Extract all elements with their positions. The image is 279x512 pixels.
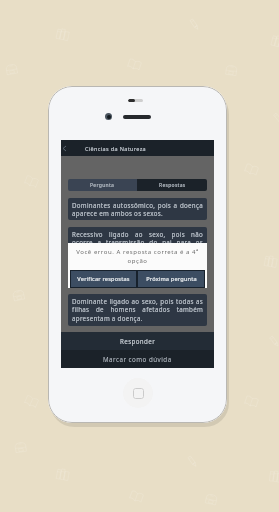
button[interactable]: Próxima pergunta — [138, 271, 204, 287]
button[interactable]: Dominantes autossômico, pois a doença ap… — [68, 198, 207, 220]
staticText: Marcar como dúvida — [103, 355, 172, 363]
staticText: Dominantes autossômico, pois a doença ap… — [72, 201, 203, 217]
staticText: Responder — [120, 337, 156, 345]
button[interactable]: Recessivo ligado ao sexo, pois não ocorr… — [68, 227, 207, 258]
button[interactable]: Pergunta — [68, 179, 137, 191]
button[interactable]: Recessivo autossômico, pois os pais não … — [68, 265, 207, 287]
staticText: Respostas — [159, 182, 186, 189]
button[interactable]: Verificar respostas — [71, 271, 136, 287]
staticText: Recessivo autossômico, pois os pais não … — [72, 268, 203, 284]
staticText: Recessivo ligado ao sexo, pois não ocorr… — [72, 230, 203, 255]
staticText: Dominante ligado ao sexo, pois todas as … — [72, 297, 203, 322]
staticText: Você errou. A resposta correta é a 4ª op… — [71, 248, 204, 265]
staticText: Ciências da Natureza — [85, 145, 147, 152]
staticText: Pergunta — [90, 182, 115, 189]
button[interactable]: Home — [123, 378, 153, 408]
staticText: Verificar respostas — [77, 275, 130, 283]
button[interactable]: Responder — [61, 332, 214, 350]
button[interactable]: Back — [61, 140, 85, 156]
staticText: Próxima pergunta — [146, 275, 197, 283]
button[interactable]: Respostas — [137, 179, 207, 191]
button[interactable]: Marcar como dúvida — [61, 350, 214, 368]
button[interactable]: Dominante ligado ao sexo, pois todas as … — [68, 294, 207, 326]
